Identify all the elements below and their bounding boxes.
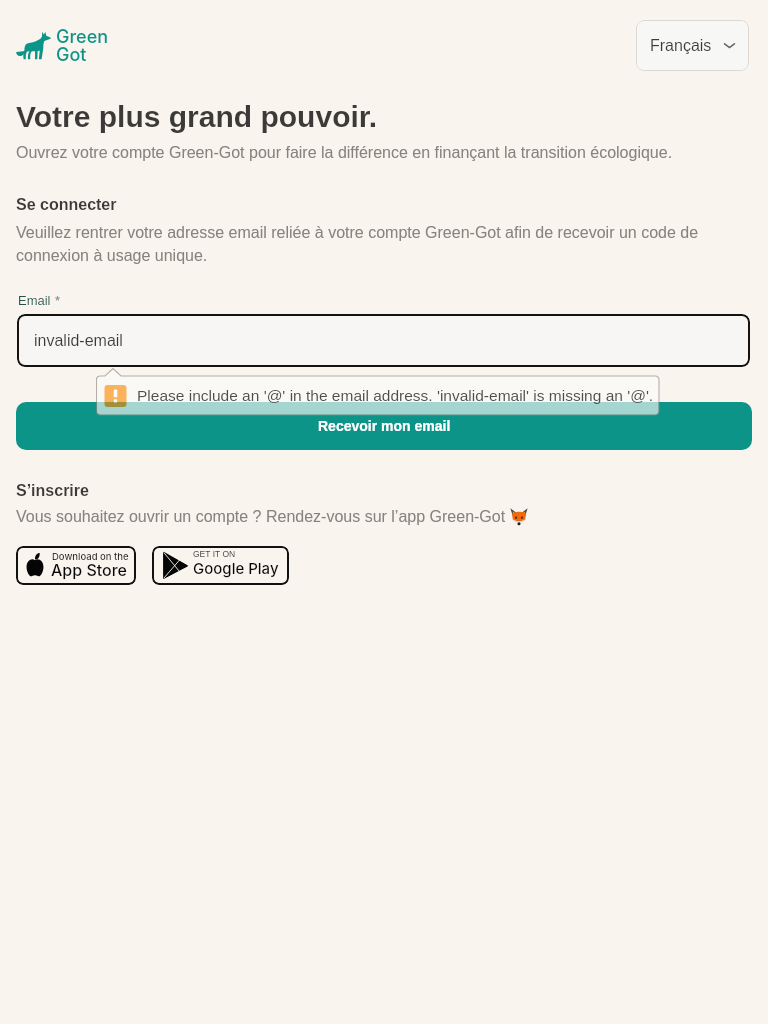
button[interactable]: Download on the App Store xyxy=(16,546,136,585)
staticText: GET IT ON xyxy=(193,549,236,558)
button[interactable]: invalid-email xyxy=(17,314,750,367)
button[interactable]: Français xyxy=(636,20,749,71)
staticText: Se connecter xyxy=(16,196,117,214)
staticText: Votre plus grand pouvoir. xyxy=(16,100,378,134)
staticText: S’inscrire xyxy=(16,482,89,500)
button[interactable]: Recevoir mon email xyxy=(16,402,752,450)
staticText: * xyxy=(55,293,61,308)
staticText: Recevoir mon email xyxy=(318,418,451,434)
staticText: Green xyxy=(56,26,109,48)
staticText: Email xyxy=(18,293,55,308)
staticText: Download on the xyxy=(52,551,129,562)
staticText: App Store xyxy=(51,560,127,579)
staticText: Veuillez rentrer votre adresse email rel… xyxy=(16,224,716,264)
staticText: Got xyxy=(56,44,87,66)
staticText: Please include an '@' in the email addre… xyxy=(137,387,654,404)
staticText: Google Play xyxy=(193,559,279,577)
staticText: Français xyxy=(650,37,712,55)
staticText: invalid-email xyxy=(34,332,123,350)
staticText: Ouvrez votre compte Green-Got pour faire… xyxy=(16,144,673,162)
button[interactable]: Get it on Google Play xyxy=(152,546,289,585)
staticText: Vous souhaitez ouvrir un compte ? Rendez… xyxy=(16,508,510,526)
